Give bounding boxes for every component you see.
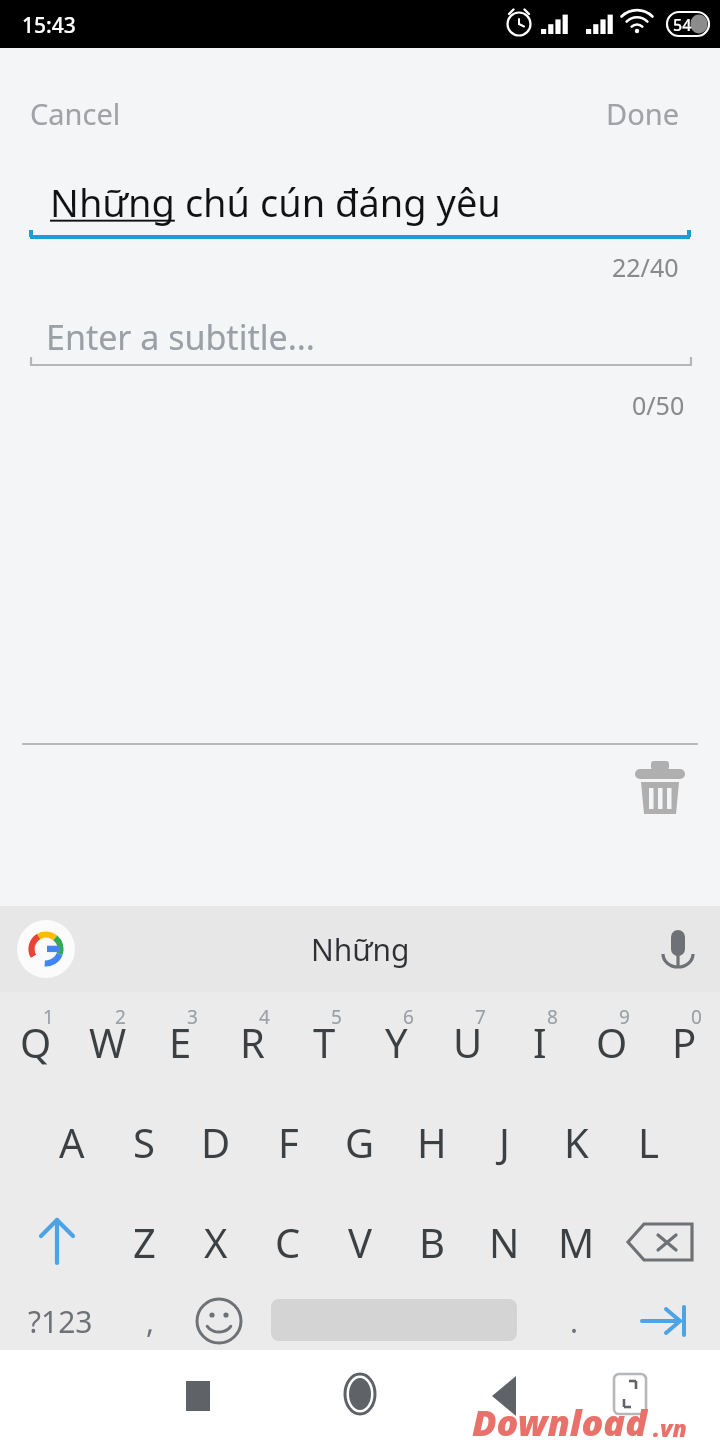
button[interactable]: Y <box>360 992 432 1092</box>
staticText: W <box>89 1015 127 1069</box>
button[interactable]: Next <box>630 1292 702 1350</box>
staticText: L <box>638 1115 659 1169</box>
staticText: 8 <box>547 1004 558 1030</box>
button[interactable]: N <box>468 1192 540 1292</box>
button[interactable]: I <box>504 992 576 1092</box>
staticText: R <box>240 1015 265 1069</box>
button[interactable]: E <box>144 992 216 1092</box>
button[interactable]: Shift <box>12 1192 102 1292</box>
staticText: U <box>453 1015 483 1069</box>
staticText: 5 <box>331 1004 342 1030</box>
staticText: , <box>146 1301 155 1342</box>
button[interactable]: Recent apps <box>172 1370 224 1422</box>
button[interactable]: J <box>468 1092 540 1192</box>
button[interactable]: Back <box>478 1368 534 1424</box>
button[interactable]: G <box>324 1092 396 1192</box>
staticText: E <box>169 1015 192 1069</box>
button[interactable]: V <box>324 1192 396 1292</box>
button[interactable]: Backspace <box>618 1192 708 1292</box>
button[interactable]: H <box>396 1092 468 1192</box>
staticText: 3 <box>187 1004 198 1030</box>
staticText: 7 <box>475 1004 486 1030</box>
staticText: Cancel <box>30 94 121 133</box>
staticText: Download <box>472 1398 647 1440</box>
button[interactable]: Những <box>240 906 480 992</box>
staticText: A <box>59 1115 85 1169</box>
button[interactable]: W <box>72 992 144 1092</box>
button[interactable]: K <box>540 1092 612 1192</box>
staticText: Enter a subtitle... <box>46 314 315 360</box>
button[interactable]: S <box>108 1092 180 1192</box>
staticText: Z <box>133 1215 156 1269</box>
button[interactable]: O <box>576 992 648 1092</box>
staticText: Done <box>606 94 679 133</box>
button[interactable]: Done <box>592 84 693 143</box>
staticText: K <box>564 1115 589 1169</box>
button[interactable]: D <box>180 1092 252 1192</box>
staticText: C <box>275 1215 301 1269</box>
staticText: 4 <box>259 1004 270 1030</box>
staticText: Y <box>385 1015 408 1069</box>
button[interactable]: Split screen <box>604 1368 656 1420</box>
staticText: P <box>672 1015 697 1069</box>
staticText: X <box>204 1215 228 1269</box>
button[interactable]: T <box>288 992 360 1092</box>
staticText: Những <box>311 929 410 970</box>
staticText: Những <box>50 176 175 228</box>
staticText: 54 <box>673 14 692 36</box>
button[interactable]: F <box>252 1092 324 1192</box>
button[interactable]: Voice input <box>652 924 704 976</box>
button[interactable]: L <box>612 1092 684 1192</box>
staticText: F <box>278 1115 299 1169</box>
staticText: chú cún đáng yêu <box>175 176 501 228</box>
staticText: 0/50 <box>632 388 685 422</box>
button[interactable]: ?123 <box>6 1292 114 1350</box>
button[interactable]: Z <box>108 1192 180 1292</box>
button[interactable]: Enter a subtitle... <box>28 306 692 368</box>
staticText: Q <box>20 1015 52 1069</box>
staticText: 2 <box>115 1004 126 1030</box>
button[interactable]: X <box>180 1192 252 1292</box>
staticText: J <box>499 1115 510 1169</box>
button[interactable]: B <box>396 1192 468 1292</box>
button[interactable]: Delete <box>626 754 694 822</box>
button[interactable]: R <box>216 992 288 1092</box>
staticText: G <box>345 1115 375 1169</box>
button[interactable]: M <box>540 1192 612 1292</box>
staticText: I <box>533 1015 547 1069</box>
staticText: N <box>489 1215 520 1269</box>
button[interactable]: C <box>252 1192 324 1292</box>
button[interactable]: . <box>545 1292 603 1350</box>
button[interactable]: Q <box>0 992 72 1092</box>
button[interactable]: , <box>118 1292 182 1350</box>
staticText: 15:43 <box>22 11 76 40</box>
button[interactable]: P <box>648 992 720 1092</box>
staticText: ?123 <box>28 1301 93 1342</box>
staticText: 9 <box>619 1004 630 1030</box>
staticText: O <box>596 1015 628 1069</box>
button[interactable]: U <box>432 992 504 1092</box>
button[interactable]: Home <box>332 1366 388 1422</box>
button[interactable]: Google <box>17 920 75 978</box>
staticText: D <box>201 1115 231 1169</box>
staticText: S <box>133 1115 155 1169</box>
staticText: 0 <box>691 1004 702 1030</box>
staticText: 6 <box>403 1004 414 1030</box>
staticText: H <box>417 1115 447 1169</box>
staticText: T <box>313 1015 336 1069</box>
staticText: B <box>419 1215 445 1269</box>
button[interactable]: Emoji <box>190 1292 248 1350</box>
button[interactable]: Những <box>28 168 692 240</box>
button[interactable]: A <box>36 1092 108 1192</box>
staticText: V <box>348 1215 372 1269</box>
staticText: 1 <box>43 1004 54 1030</box>
button[interactable]: Cancel <box>16 84 135 143</box>
staticText: . <box>570 1301 579 1342</box>
staticText: .vn <box>653 1412 687 1440</box>
staticText: M <box>558 1215 595 1269</box>
staticText: 22/40 <box>612 250 679 284</box>
